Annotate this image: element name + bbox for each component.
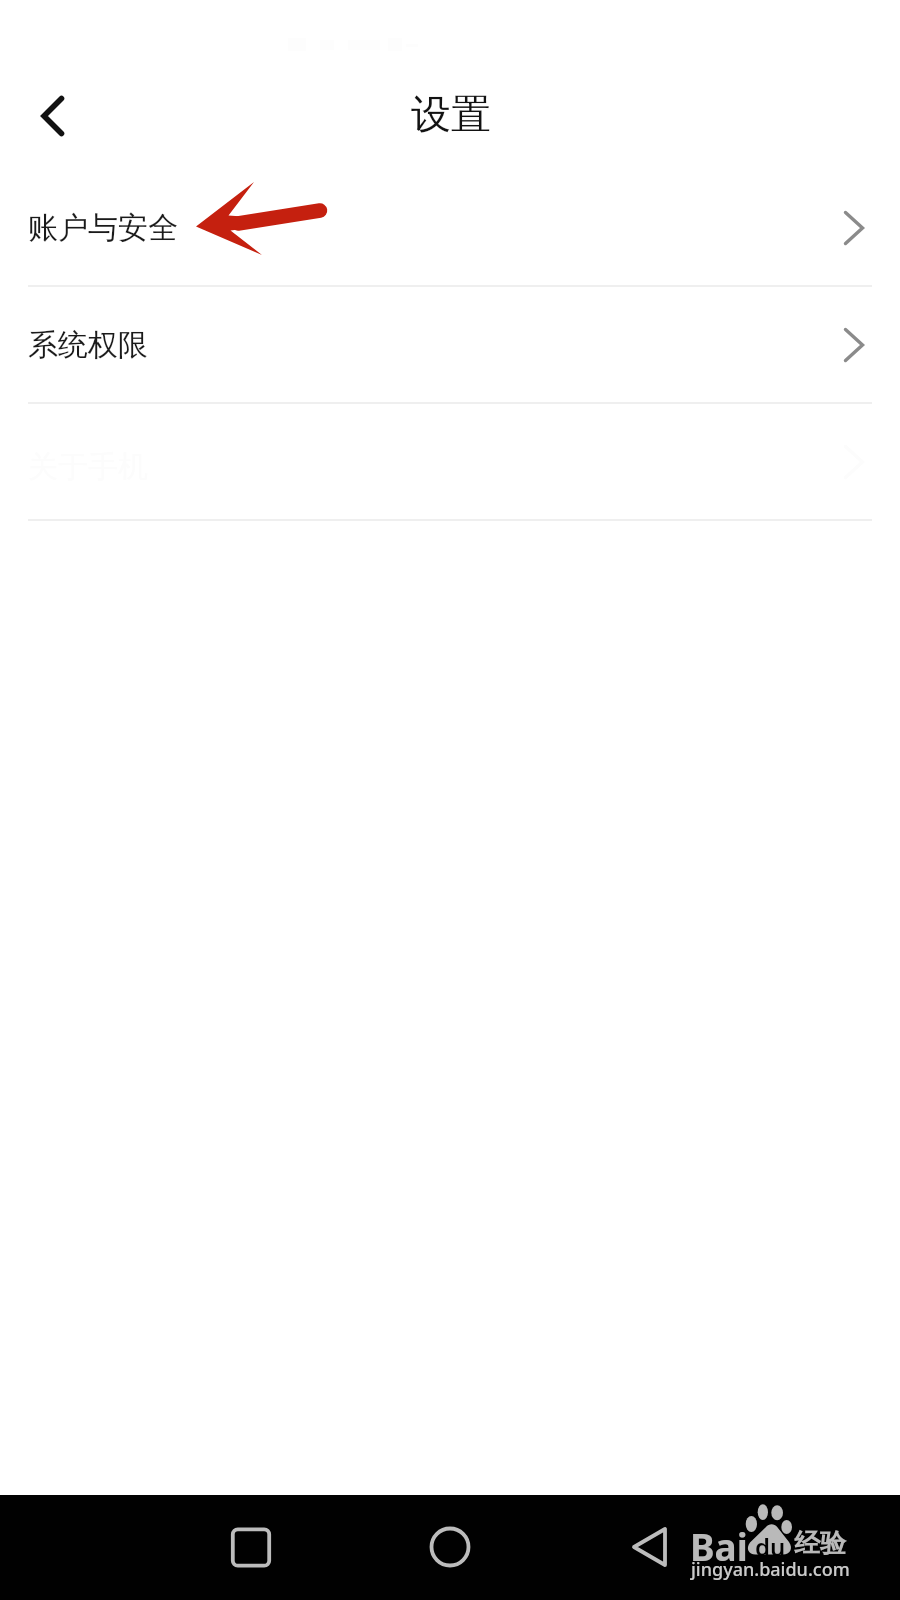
staticText: jingyan.baidu.com — [691, 1557, 850, 1582]
staticText: Bai — [690, 1521, 748, 1571]
button[interactable]: 账户与安全 — [0, 170, 900, 287]
staticText: du — [755, 1530, 786, 1563]
button[interactable]: 系统权限 — [0, 287, 900, 404]
button[interactable]: Back — [610, 1508, 690, 1588]
staticText: 经验 — [794, 1527, 846, 1560]
button[interactable]: Recent apps — [210, 1508, 290, 1588]
staticText: 设置 — [411, 89, 491, 139]
staticText: 系统权限 — [28, 326, 148, 364]
button[interactable]: Home — [410, 1508, 490, 1588]
staticText: 账户与安全 — [28, 209, 178, 247]
button[interactable]: Back — [12, 81, 92, 153]
